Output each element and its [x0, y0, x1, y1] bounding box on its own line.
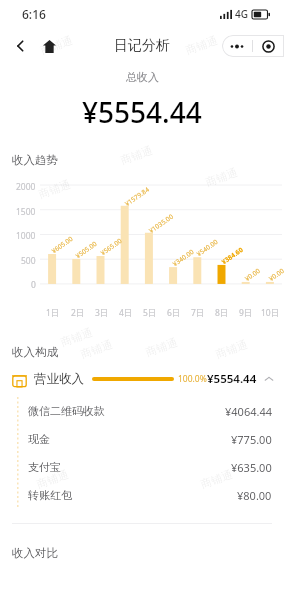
button[interactable]: 转账红包	[0, 481, 284, 509]
staticText: 5日	[143, 307, 157, 319]
staticText: ¥540.00	[195, 237, 220, 258]
staticText: ¥635.00	[231, 460, 272, 475]
staticText: 商铺通	[39, 33, 74, 57]
staticText: 4G	[235, 7, 248, 21]
staticText: ¥5554.44	[207, 371, 257, 387]
staticText: 支付宝	[28, 460, 61, 474]
staticText: ¥1579.84	[123, 185, 151, 208]
staticText: 微信二维码收款	[28, 404, 105, 418]
staticText: 商铺通	[35, 467, 70, 491]
button[interactable]: 目标	[253, 35, 284, 57]
staticText: 100.0%	[178, 373, 207, 385]
staticText: ¥5554.44	[82, 93, 202, 131]
staticText: 商铺通	[119, 143, 154, 167]
staticText: 商铺通	[59, 325, 94, 349]
staticText: ¥775.00	[231, 432, 272, 447]
staticText: ¥1035.00	[147, 212, 175, 235]
staticText: 商铺通	[214, 337, 249, 361]
staticText: 6日	[167, 307, 181, 319]
staticText: 收入趋势	[12, 153, 58, 167]
staticText: 8日	[215, 307, 229, 319]
staticText: 500	[21, 255, 36, 267]
staticText: 转账红包	[28, 488, 72, 502]
staticText: 收入对比	[12, 546, 58, 560]
staticText: 10日	[261, 307, 280, 319]
staticText: ¥4064.44	[225, 404, 272, 419]
staticText: 6:16	[22, 6, 46, 22]
button[interactable]: 首页	[38, 35, 60, 57]
staticText: ¥340.00	[171, 247, 196, 268]
staticText: 商铺通	[144, 335, 179, 359]
staticText: 0	[31, 279, 36, 291]
staticText: ¥605.00	[50, 234, 75, 255]
staticText: 2000	[16, 181, 36, 193]
staticText: 4日	[119, 307, 133, 319]
staticText: 商铺通	[199, 467, 234, 491]
staticText: 商铺通	[37, 177, 72, 201]
staticText: 3日	[95, 307, 109, 319]
button[interactable]: 微信二维码收款	[0, 397, 284, 425]
staticText: 1日	[46, 307, 60, 319]
staticText: 商铺通	[79, 337, 114, 361]
button[interactable]: 返回	[6, 31, 36, 61]
button[interactable]: 营业收入	[0, 369, 284, 389]
button[interactable]: 更多	[222, 35, 252, 57]
staticText: 商铺通	[204, 165, 239, 189]
staticText: ¥384.60	[220, 245, 245, 266]
button[interactable]: 支付宝	[0, 453, 284, 481]
staticText: 日记分析	[114, 37, 170, 55]
staticText: ¥0.00	[267, 266, 284, 283]
staticText: 现金	[28, 432, 50, 446]
staticText: ¥80.00	[237, 488, 272, 503]
staticText: 1000	[16, 230, 36, 242]
staticText: ¥565.00	[99, 236, 124, 257]
staticText: ¥0.00	[243, 266, 262, 283]
staticText: 商铺通	[184, 33, 219, 57]
staticText: 收入构成	[12, 345, 58, 359]
staticText: ¥505.00	[74, 239, 99, 260]
staticText: 2日	[71, 307, 85, 319]
staticText: 9日	[239, 307, 253, 319]
button[interactable]: 现金	[0, 425, 284, 453]
staticText: 1500	[16, 206, 36, 218]
staticText: 7日	[191, 307, 205, 319]
staticText: 营业收入	[34, 371, 84, 387]
staticText: 总收入	[126, 70, 159, 84]
